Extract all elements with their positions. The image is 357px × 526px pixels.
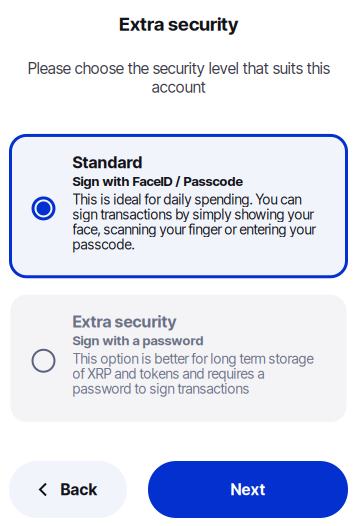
staticText: Extra security [72, 312, 176, 331]
staticText: This is ideal for daily spending. You ca… [72, 191, 315, 253]
staticText: Extra security [119, 13, 238, 35]
staticText: Standard [72, 152, 142, 172]
button[interactable]: Standard [10, 135, 346, 277]
staticText: Back [60, 480, 97, 499]
staticText: Sign with a password [72, 332, 203, 348]
button[interactable]: Extra security [10, 295, 346, 422]
button[interactable]: Back [9, 461, 127, 518]
staticText: Next [230, 480, 265, 499]
staticText: Please choose the security level that su… [27, 59, 329, 96]
staticText: This option is better for long term stor… [72, 350, 313, 397]
staticText: Sign with FaceID / Passcode [72, 173, 242, 189]
button[interactable]: Next [148, 461, 348, 518]
